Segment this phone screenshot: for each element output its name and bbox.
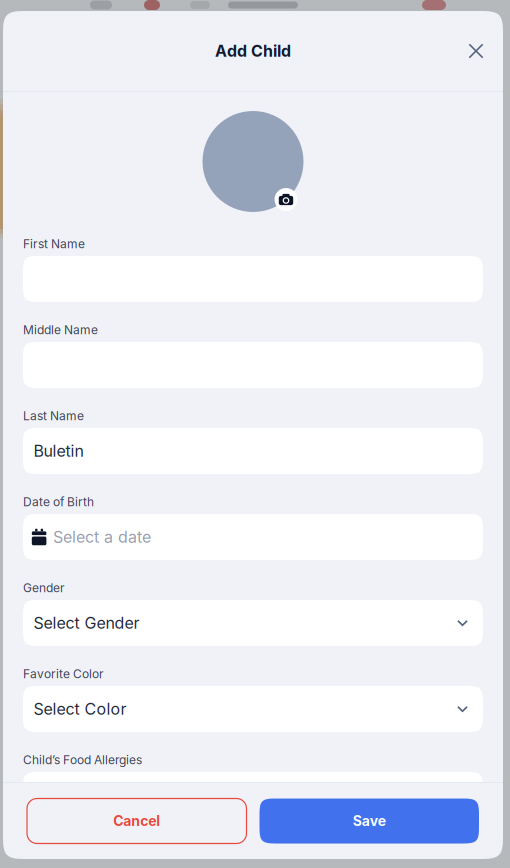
staticText: Last Name bbox=[23, 409, 84, 423]
staticText: Middle Name bbox=[23, 323, 98, 337]
button[interactable]: Select Color bbox=[23, 686, 483, 732]
staticText: Date of Birth bbox=[23, 495, 94, 509]
staticText: Buletin bbox=[33, 441, 83, 461]
staticText: Select Color bbox=[33, 699, 126, 719]
staticText: Add Child bbox=[215, 41, 291, 61]
staticText: Select a date bbox=[53, 527, 151, 547]
button[interactable]: Select a date bbox=[23, 514, 483, 560]
staticText: Save bbox=[353, 812, 386, 829]
button[interactable]: Cancel bbox=[27, 798, 246, 843]
staticText: Favorite Color bbox=[23, 667, 104, 681]
staticText: Select Gender bbox=[33, 613, 139, 633]
staticText: Cancel bbox=[113, 812, 160, 829]
button[interactable]: Save bbox=[259, 798, 479, 843]
staticText: First Name bbox=[23, 237, 85, 251]
button[interactable]: Close bbox=[458, 33, 494, 69]
staticText: Gender bbox=[23, 581, 65, 595]
button[interactable]: Select Gender bbox=[23, 600, 483, 646]
staticText: Child’s Food Allergies bbox=[23, 753, 142, 767]
